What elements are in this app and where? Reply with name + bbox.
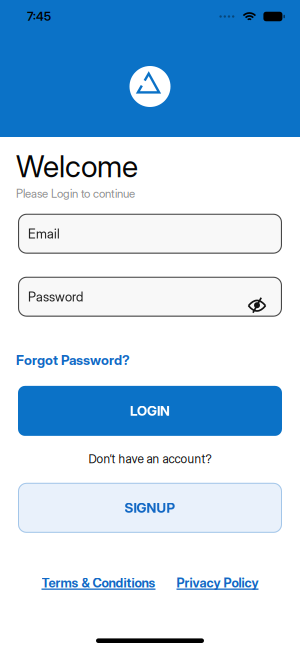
button[interactable]: Privacy Policy bbox=[176, 575, 258, 590]
staticText: Password bbox=[28, 289, 83, 304]
button[interactable]: Email bbox=[18, 214, 282, 254]
staticText: LOGIN bbox=[130, 403, 170, 419]
button[interactable]: Show password bbox=[248, 281, 282, 313]
button[interactable]: Password bbox=[18, 277, 282, 317]
staticText: Privacy Policy bbox=[176, 575, 258, 590]
staticText: Terms & Conditions bbox=[41, 575, 155, 590]
staticText: Please Login to continue bbox=[16, 187, 135, 200]
button[interactable]: LOGIN bbox=[18, 386, 282, 436]
staticText: SIGNUP bbox=[124, 500, 175, 516]
staticText: Forgot Password? bbox=[16, 352, 130, 368]
button[interactable]: Terms & Conditions bbox=[41, 575, 155, 590]
staticText: Don’t have an account? bbox=[88, 452, 211, 466]
button[interactable]: Forgot Password? bbox=[16, 352, 130, 368]
staticText: Welcome bbox=[16, 149, 138, 184]
staticText: 7:45 bbox=[27, 9, 51, 23]
button[interactable]: SIGNUP bbox=[18, 483, 282, 533]
staticText: Email bbox=[28, 226, 60, 241]
